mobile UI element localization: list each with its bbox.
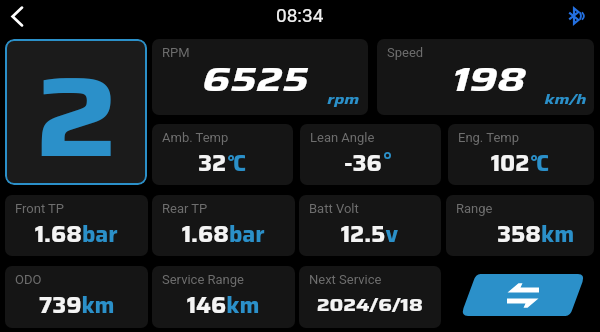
staticText: 08:34 (276, 4, 324, 26)
button[interactable]: Amb. Temp (152, 124, 293, 185)
staticText: ODO (15, 272, 42, 287)
button[interactable]: Service Range (152, 266, 295, 328)
staticText: 146km (187, 287, 260, 323)
button[interactable]: Next Service (299, 266, 441, 328)
staticText: 102 (491, 145, 530, 181)
button[interactable]: Batt Volt (299, 195, 441, 256)
staticText: 1.68bar (182, 216, 265, 252)
staticText: Front TP (15, 201, 65, 216)
button[interactable]: Switch units (461, 274, 585, 316)
button[interactable]: Speed (377, 39, 594, 115)
button[interactable]: RPM (152, 39, 368, 115)
staticText: 1.68bar (35, 216, 118, 252)
button[interactable]: 2 (5, 39, 147, 185)
staticText: -36 (344, 145, 382, 181)
button[interactable]: Back (2, 0, 32, 32)
staticText: Amb. Temp (162, 130, 229, 145)
staticText: 2 (34, 39, 119, 175)
staticText: 198 (453, 54, 526, 106)
staticText: Rear TP (162, 201, 208, 216)
button[interactable]: Lean Angle (300, 124, 441, 185)
staticText: 739km (39, 287, 115, 323)
staticText: 6525 (202, 54, 310, 106)
staticText: Next Service (309, 272, 382, 287)
button[interactable]: Range (446, 195, 594, 256)
button[interactable]: ODO (5, 266, 148, 328)
button[interactable]: Rear TP (152, 195, 295, 256)
staticText: Eng. Temp (458, 130, 519, 145)
staticText: 32 (198, 145, 227, 181)
other: Bluetooth (565, 5, 587, 27)
staticText: RPM (162, 45, 190, 60)
staticText: C (536, 145, 550, 181)
staticText: Range (456, 201, 493, 216)
staticText: Service Range (162, 272, 244, 287)
staticText: rpm (327, 88, 360, 110)
button[interactable]: Front TP (5, 195, 148, 256)
staticText: 2024/6/18 (317, 291, 423, 319)
staticText: Batt Volt (309, 201, 359, 216)
staticText: C (233, 145, 247, 181)
staticText: Lean Angle (310, 130, 375, 145)
staticText: 12.5v (341, 216, 399, 252)
staticText: 358km (497, 216, 575, 252)
staticText: km/h (544, 88, 586, 110)
staticText: Speed (387, 45, 424, 60)
button[interactable]: Eng. Temp (448, 124, 594, 185)
